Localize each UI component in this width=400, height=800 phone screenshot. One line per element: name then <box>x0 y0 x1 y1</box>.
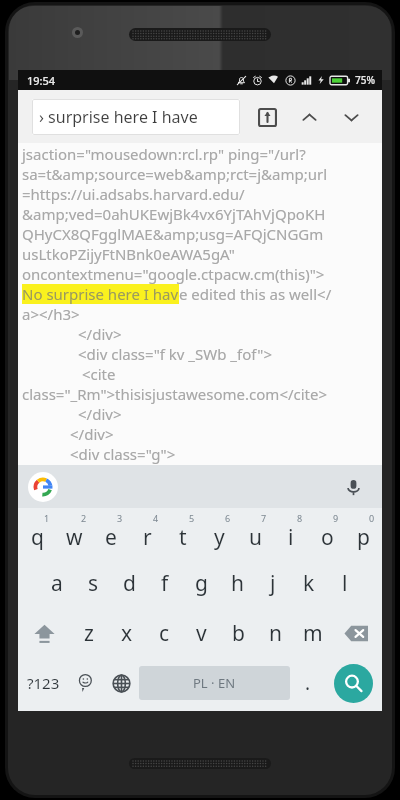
staticText: f <box>161 569 169 598</box>
button[interactable]: d <box>111 558 147 608</box>
button[interactable]: 9 <box>309 508 345 558</box>
staticText: 9 <box>333 512 339 524</box>
button[interactable]: Next match <box>334 100 368 134</box>
button[interactable]: ?123 <box>20 658 67 708</box>
staticText: g <box>195 569 208 598</box>
staticText: i <box>288 523 294 552</box>
button[interactable]: Previous match <box>292 100 326 134</box>
button[interactable]: 5 <box>165 508 201 558</box>
button[interactable]: Emoji <box>67 658 103 708</box>
staticText: sa=t&amp;source=web&amp;rct=j&amp;url <box>22 164 328 184</box>
staticText: </div> <box>78 404 122 424</box>
staticText: a <box>51 569 63 598</box>
button[interactable]: PL · EN <box>139 666 290 700</box>
button[interactable]: 4 <box>129 508 165 558</box>
staticText: r <box>143 523 152 552</box>
button[interactable]: 6 <box>201 508 237 558</box>
button[interactable]: 0 <box>345 508 381 558</box>
staticText: PL · EN <box>193 674 236 692</box>
button[interactable]: 2 <box>56 508 93 558</box>
staticText: y <box>214 523 225 552</box>
button[interactable]: Search <box>334 664 373 703</box>
staticText: 4 <box>153 512 159 524</box>
button[interactable]: m <box>294 608 331 658</box>
staticText: p <box>357 523 370 552</box>
staticText: <div class="f kv _SWb _fof"> <box>78 344 272 364</box>
staticText: 6 <box>225 512 231 524</box>
button[interactable]: g <box>183 558 219 608</box>
button[interactable]: Shift <box>19 608 70 658</box>
staticText: h <box>231 569 244 598</box>
staticText: jsaction="mousedown:rcl.rp" ping="/url? <box>22 144 306 164</box>
staticText: No surprise here I hav <box>22 284 179 304</box>
staticText: z <box>84 619 94 648</box>
button[interactable]: 8 <box>273 508 309 558</box>
staticText: s <box>88 569 99 598</box>
staticText: o <box>321 523 334 552</box>
staticText: 1 <box>44 512 50 524</box>
staticText: <cite <box>78 364 116 384</box>
staticText: e <box>105 523 117 552</box>
button[interactable]: Backspace <box>331 608 381 658</box>
button[interactable]: z <box>70 608 108 658</box>
staticText: ?123 <box>27 673 60 693</box>
button[interactable]: a <box>38 558 75 608</box>
staticText: n <box>269 619 282 648</box>
staticText: &amp;ved=0ahUKEwjBk4vx6YjTAhVjQpoKH <box>22 204 326 224</box>
staticText: =https://ui.adsabs.harvard.edu/ <box>22 184 245 204</box>
staticText: QHyCX8QFgglMAE&amp;usg=AFQjCNGGm <box>22 224 324 244</box>
staticText: 3 <box>117 512 123 524</box>
button[interactable]: › surprise here I have <box>32 99 240 135</box>
button[interactable]: n <box>257 608 294 658</box>
staticText: c <box>159 619 170 648</box>
staticText: 7 <box>261 512 267 524</box>
staticText: 2 <box>81 512 87 524</box>
button[interactable]: . <box>290 658 326 708</box>
staticText: usLtkoPZijyFtNBnk0eAWA5gA" <box>22 244 235 264</box>
staticText: oncontextmenu="google.ctpacw.cm(this)"> <box>22 264 325 284</box>
staticText: e edited this as well</ <box>179 284 332 304</box>
staticText: 19:54 <box>27 73 56 88</box>
button[interactable]: c <box>146 608 183 658</box>
button[interactable]: j <box>255 558 291 608</box>
button[interactable]: k <box>291 558 327 608</box>
button[interactable]: 3 <box>93 508 129 558</box>
button[interactable]: v <box>183 608 220 658</box>
staticText: m <box>303 619 323 648</box>
staticText: </div> <box>78 324 122 344</box>
button[interactable]: f <box>147 558 183 608</box>
button[interactable]: Google search <box>28 472 58 502</box>
staticText: d <box>123 569 136 598</box>
staticText: . <box>305 670 311 696</box>
button[interactable]: b <box>220 608 257 658</box>
button[interactable]: s <box>75 558 111 608</box>
button[interactable]: l <box>327 558 363 608</box>
staticText: x <box>121 619 133 648</box>
button[interactable]: 1 <box>19 508 56 558</box>
button[interactable]: h <box>219 558 255 608</box>
staticText: t <box>179 523 187 552</box>
button[interactable]: Change language <box>103 658 139 708</box>
staticText: u <box>249 523 262 552</box>
staticText: k <box>303 569 315 598</box>
staticText: q <box>31 523 44 552</box>
staticText: j <box>270 569 276 598</box>
staticText: 8 <box>297 512 303 524</box>
button[interactable]: Open in browser <box>250 100 284 134</box>
button[interactable]: 7 <box>237 508 273 558</box>
staticText: › surprise here I have <box>39 106 198 128</box>
staticText: w <box>66 523 83 552</box>
staticText: 75% <box>355 73 375 87</box>
staticText: b <box>232 619 245 648</box>
staticText: <div class="g"> <box>70 444 176 464</box>
staticText: </div> <box>70 424 114 444</box>
staticText: class="_Rm">thisisjustawesome.com</cite> <box>22 384 328 404</box>
staticText: l <box>342 569 348 598</box>
button[interactable]: x <box>108 608 146 658</box>
staticText: a></h3> <box>22 304 80 324</box>
button[interactable]: Voice input <box>338 472 368 502</box>
staticText: v <box>196 619 207 648</box>
staticText: 0 <box>369 512 375 524</box>
staticText: 5 <box>189 512 195 524</box>
